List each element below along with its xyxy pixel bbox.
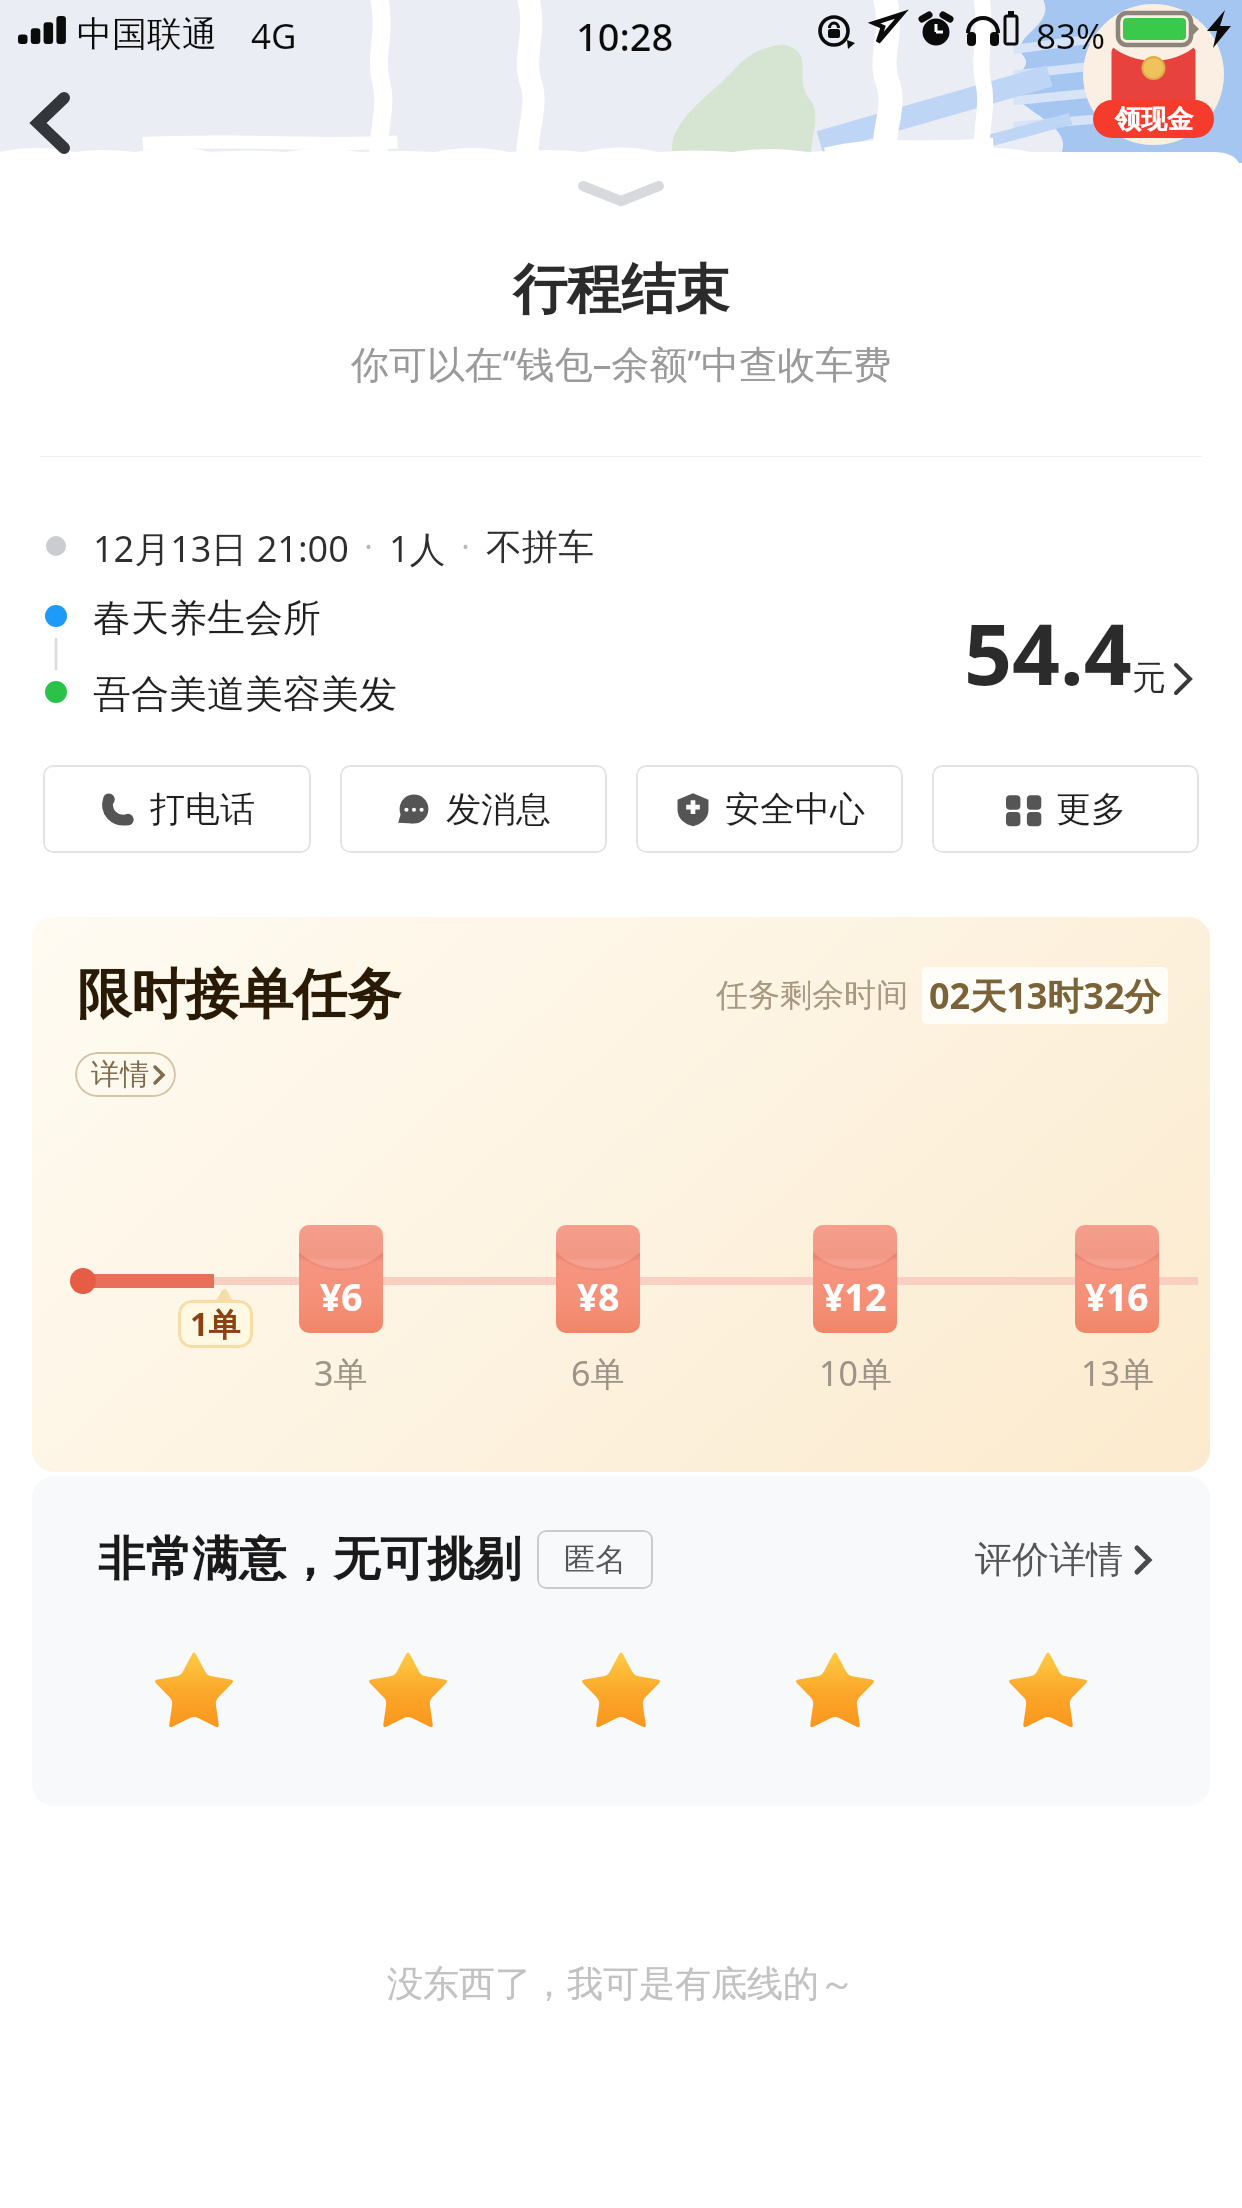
staticText: 任务剩余时间 <box>716 975 908 1015</box>
staticText: 限时接单任务 <box>77 961 401 1029</box>
button[interactable]: 更多 <box>932 765 1199 853</box>
staticText: 详情 <box>91 1056 149 1093</box>
button[interactable]: 54.4 <box>964 595 1192 709</box>
staticText: 1人 <box>389 524 446 568</box>
staticText: 83% <box>1036 12 1106 60</box>
staticText: 02天13时32分 <box>929 971 1161 1020</box>
button[interactable]: 安全中心 <box>636 765 903 853</box>
staticText: 领现金 <box>1115 103 1193 136</box>
staticText: 中国联通 <box>77 12 217 56</box>
staticText: ¥16 <box>1085 1271 1149 1321</box>
staticText: 非常满意，无可挑剔 <box>98 1530 521 1589</box>
staticText: 1单 <box>190 1302 241 1346</box>
staticText: 更多 <box>1056 787 1126 831</box>
staticText: 评价详情 <box>975 1536 1123 1583</box>
button[interactable]: 发消息 <box>340 765 607 853</box>
staticText: 没东西了，我可是有底线的～ <box>0 1961 1242 2006</box>
button[interactable]: 打电话 <box>43 765 311 853</box>
staticText: · <box>349 526 389 567</box>
staticText: 10单 <box>819 1350 892 1396</box>
staticText: 行程结束 <box>0 256 1242 324</box>
staticText: 发消息 <box>446 787 551 831</box>
staticText: 12月13日 21:00 <box>93 524 349 568</box>
staticText: 10:28 <box>576 10 674 62</box>
staticText: 安全中心 <box>725 787 865 831</box>
staticText: 3单 <box>314 1350 368 1396</box>
button[interactable]: 非常满意，无可挑剔 <box>32 1476 1210 1806</box>
staticText: ¥12 <box>823 1271 887 1321</box>
staticText: ¥8 <box>577 1271 620 1321</box>
staticText: 吾合美道美容美发 <box>93 670 397 718</box>
button[interactable]: 评价详情 <box>975 1536 1151 1583</box>
staticText: 打电话 <box>150 787 255 831</box>
button[interactable]: Back <box>10 82 92 164</box>
button[interactable]: 详情 <box>75 1052 176 1097</box>
staticText: 6单 <box>571 1350 625 1396</box>
staticText: 你可以在“钱包–余额”中查收车费 <box>0 337 1242 389</box>
staticText: 元 <box>1132 656 1166 699</box>
button[interactable]: 领现金 <box>1083 4 1224 138</box>
staticText: 54.4 <box>964 595 1132 709</box>
staticText: 春天养生会所 <box>93 594 321 638</box>
staticText: 13单 <box>1081 1350 1154 1396</box>
staticText: · <box>446 526 486 567</box>
button[interactable]: 限时接单任务 <box>32 917 1210 1472</box>
staticText: 4G <box>251 12 297 60</box>
staticText: 不拼车 <box>486 524 594 568</box>
staticText: ¥6 <box>320 1271 363 1321</box>
staticText: 匿名 <box>564 1540 626 1579</box>
